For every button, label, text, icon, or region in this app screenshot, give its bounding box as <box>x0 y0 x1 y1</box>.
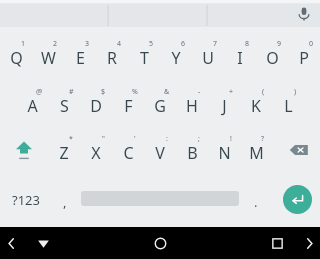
staticText: D <box>90 95 102 117</box>
staticText: & <box>164 87 170 97</box>
staticText: 0 <box>309 39 314 49</box>
button[interactable]: Z <box>48 127 80 173</box>
staticText: ?123 <box>12 191 40 209</box>
button[interactable]: M <box>240 127 272 173</box>
staticText: $ <box>101 87 106 97</box>
button[interactable]: Voice input <box>293 3 315 25</box>
staticText: ( <box>262 87 265 97</box>
button[interactable]: K <box>240 80 272 126</box>
staticText: * <box>69 134 73 144</box>
button[interactable]: X <box>80 127 112 173</box>
button[interactable]: B <box>176 127 208 173</box>
staticText: # <box>69 87 74 97</box>
button[interactable]: Y <box>160 32 192 78</box>
button[interactable]: Backspace <box>278 127 320 173</box>
staticText: G <box>154 95 166 117</box>
button[interactable]: P <box>288 32 320 78</box>
staticText: ; <box>198 134 200 144</box>
button[interactable]: Shift <box>0 127 48 173</box>
staticText: 1 <box>21 39 26 49</box>
staticText: . <box>254 193 258 211</box>
button[interactable]: Q <box>0 32 32 78</box>
button[interactable]: Hide keyboard <box>22 227 64 259</box>
button[interactable]: S <box>48 80 80 126</box>
staticText: + <box>229 87 234 97</box>
staticText: 6 <box>181 39 186 49</box>
button[interactable]: C <box>112 127 144 173</box>
staticText: @ <box>36 87 43 97</box>
staticText: 9 <box>277 39 282 49</box>
button[interactable]: N <box>208 127 240 173</box>
button[interactable]: Enter <box>275 177 319 221</box>
staticText: Z <box>59 142 69 164</box>
staticText: B <box>187 142 198 164</box>
staticText: 5 <box>149 39 154 49</box>
staticText: U <box>202 47 214 69</box>
button[interactable]: O <box>256 32 288 78</box>
staticText: Q <box>10 47 23 69</box>
staticText: O <box>266 47 279 69</box>
staticText: ? <box>261 134 265 144</box>
staticText: 8 <box>245 39 250 49</box>
staticText: % <box>132 87 138 97</box>
button[interactable]: V <box>144 127 176 173</box>
staticText: I <box>237 47 243 69</box>
staticText: A <box>27 95 38 117</box>
staticText: Y <box>171 47 181 69</box>
button[interactable]: Home <box>64 227 256 259</box>
staticText: 3 <box>85 39 90 49</box>
staticText: S <box>60 95 69 117</box>
button[interactable]: Recents <box>256 227 298 259</box>
staticText: X <box>91 142 101 164</box>
button[interactable]: G <box>144 80 176 126</box>
button[interactable]: Previous <box>0 227 22 259</box>
staticText: W <box>41 47 56 69</box>
staticText: 2 <box>53 39 58 49</box>
staticText: M <box>249 142 264 164</box>
button[interactable]: R <box>96 32 128 78</box>
button[interactable]: ?123 <box>0 179 52 221</box>
button[interactable]: U <box>192 32 224 78</box>
button[interactable]: A <box>16 80 48 126</box>
button[interactable]: H <box>176 80 208 126</box>
button[interactable]: , <box>52 181 78 223</box>
staticText: H <box>186 95 198 117</box>
button[interactable]: E <box>64 32 96 78</box>
staticText: ' <box>134 134 136 144</box>
staticText: L <box>284 95 293 117</box>
button[interactable]: T <box>128 32 160 78</box>
staticText: V <box>155 142 165 164</box>
button[interactable]: D <box>80 80 112 126</box>
staticText: : <box>166 134 168 144</box>
button[interactable]: . <box>244 181 268 223</box>
button[interactable]: L <box>272 80 304 126</box>
staticText: P <box>299 47 309 69</box>
staticText: 4 <box>117 39 122 49</box>
staticText: E <box>76 47 85 69</box>
staticText: J <box>222 95 227 117</box>
staticText: R <box>107 47 117 69</box>
button[interactable]: F <box>112 80 144 126</box>
staticText: N <box>218 142 231 164</box>
staticText: C <box>123 142 134 164</box>
staticText: " <box>102 134 105 144</box>
staticText: ! <box>230 134 232 144</box>
staticText: - <box>198 87 201 97</box>
button[interactable]: W <box>32 32 64 78</box>
button[interactable]: Next <box>298 227 320 259</box>
staticText: 7 <box>213 39 218 49</box>
button[interactable]: I <box>224 32 256 78</box>
staticText: ) <box>294 87 297 97</box>
staticText: , <box>63 193 67 211</box>
staticText: F <box>124 95 133 117</box>
staticText: K <box>251 95 261 117</box>
staticText: T <box>140 47 149 69</box>
button[interactable]: J <box>208 80 240 126</box>
